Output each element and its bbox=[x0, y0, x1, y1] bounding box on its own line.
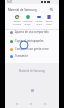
staticText: WhatsApp Enviar bbox=[22, 20, 33, 25]
button[interactable]: Transmitir bbox=[5, 52, 59, 60]
button[interactable]: WhatsApp Enviar bbox=[22, 15, 33, 25]
staticText: Ajustes de uso compartido bbox=[15, 30, 49, 34]
button[interactable]: Compartir con gente cerca bbox=[5, 45, 59, 53]
button[interactable]: Nearby Share bbox=[33, 15, 44, 25]
button[interactable]: Back bbox=[13, 100, 21, 108]
staticText: Google Chrome bbox=[13, 20, 21, 25]
button[interactable]: Google Chrome bbox=[11, 15, 22, 25]
button[interactable]: Ajustes de uso compartido bbox=[5, 28, 59, 36]
staticText: Compartir con gente cerca bbox=[15, 47, 49, 51]
button[interactable]: Search bbox=[49, 7, 54, 12]
staticText: Transmitir bbox=[15, 54, 28, 58]
staticText: Copiar al portapapeles bbox=[15, 39, 44, 43]
staticText: Material de Samsung bbox=[8, 8, 37, 12]
staticText: Material de Samsung bbox=[5, 69, 59, 73]
staticText: 9:41 bbox=[7, 0, 13, 4]
button[interactable]: Recents bbox=[41, 100, 49, 108]
staticText: Nearby Share bbox=[35, 20, 43, 25]
button[interactable]: Copiar al portapapeles bbox=[5, 37, 59, 45]
button[interactable]: Google Drive bbox=[43, 15, 54, 25]
button[interactable]: Home bbox=[27, 100, 35, 108]
staticText: Google Drive bbox=[45, 20, 53, 25]
